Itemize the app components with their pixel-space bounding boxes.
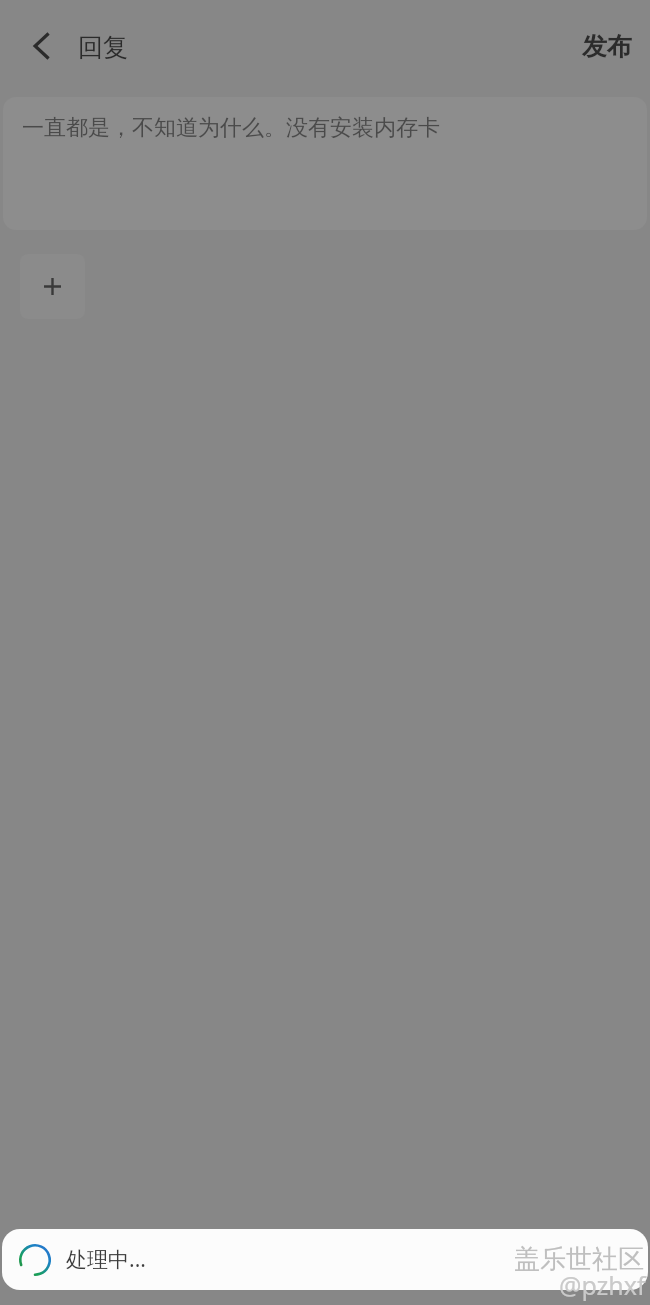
staticText: 处理中... (66, 1245, 146, 1274)
staticText: 盖乐世社区 (514, 1243, 644, 1276)
button[interactable]: 处理中... (2, 1229, 648, 1290)
button[interactable]: 发布 (564, 17, 650, 76)
staticText: 发布 (582, 31, 632, 62)
button[interactable]: Add image (20, 254, 85, 319)
staticText: @pzhxf (559, 1268, 646, 1302)
button[interactable]: 一直都是，不知道为什么。没有安装内存卡 (3, 97, 647, 230)
staticText: 回复 (78, 32, 128, 63)
button[interactable]: Back (10, 14, 74, 78)
staticText: 一直都是，不知道为什么。没有安装内存卡 (22, 114, 440, 142)
